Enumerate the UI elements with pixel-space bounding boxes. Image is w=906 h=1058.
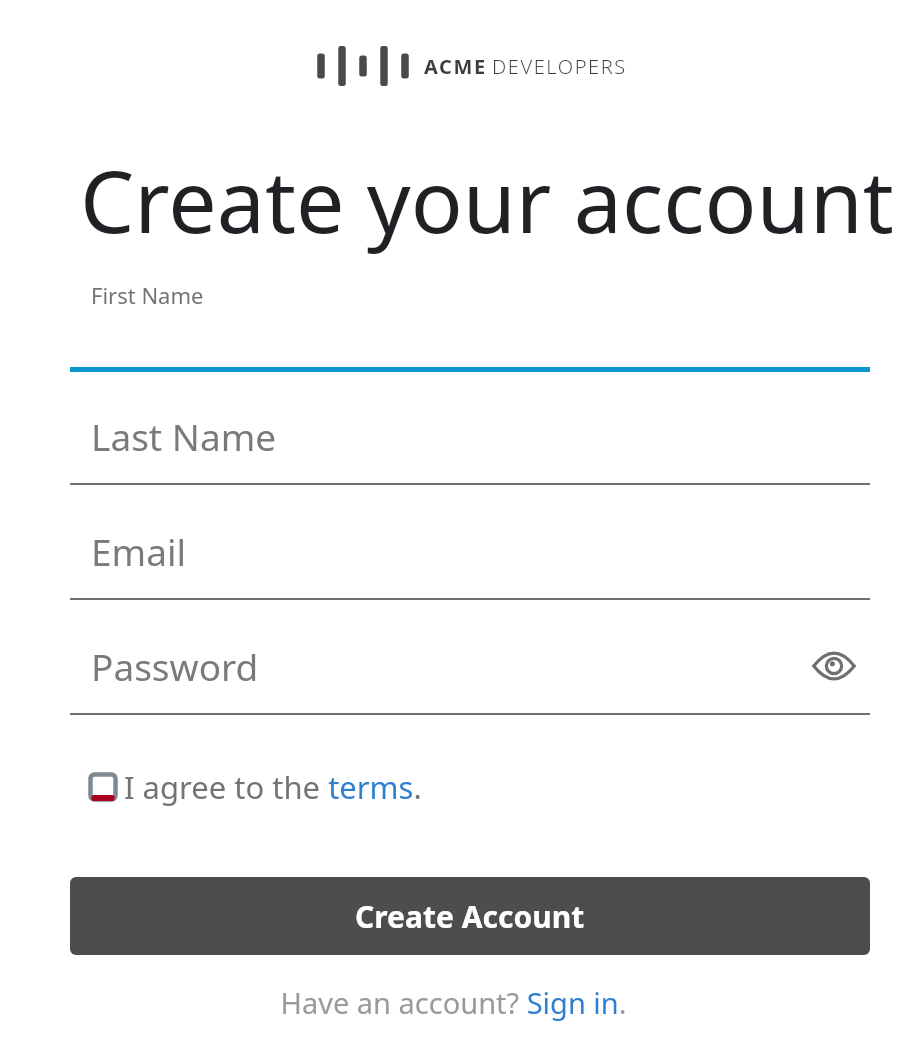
button[interactable]: Show password [808,640,860,692]
staticText: ACME DEVELOPERS [424,53,627,80]
button[interactable]: First Name [70,262,870,372]
staticText: First Name [91,280,204,310]
staticText: I agree to the terms. [124,766,422,808]
staticText: Email [91,526,187,576]
button[interactable]: Last Name [70,383,870,485]
staticText: Create Account [355,896,585,937]
staticText: Last Name [91,411,277,461]
button[interactable]: Email [70,498,870,600]
button[interactable]: Have an account? Sign in. [0,980,906,1024]
staticText: Create your account [80,141,894,258]
button[interactable]: Create Account [70,877,870,955]
staticText: Have an account? Sign in. [280,983,627,1022]
staticText: Password [91,641,259,691]
button[interactable]: Password [70,613,870,715]
button[interactable]: I agree to the terms. [88,765,422,809]
